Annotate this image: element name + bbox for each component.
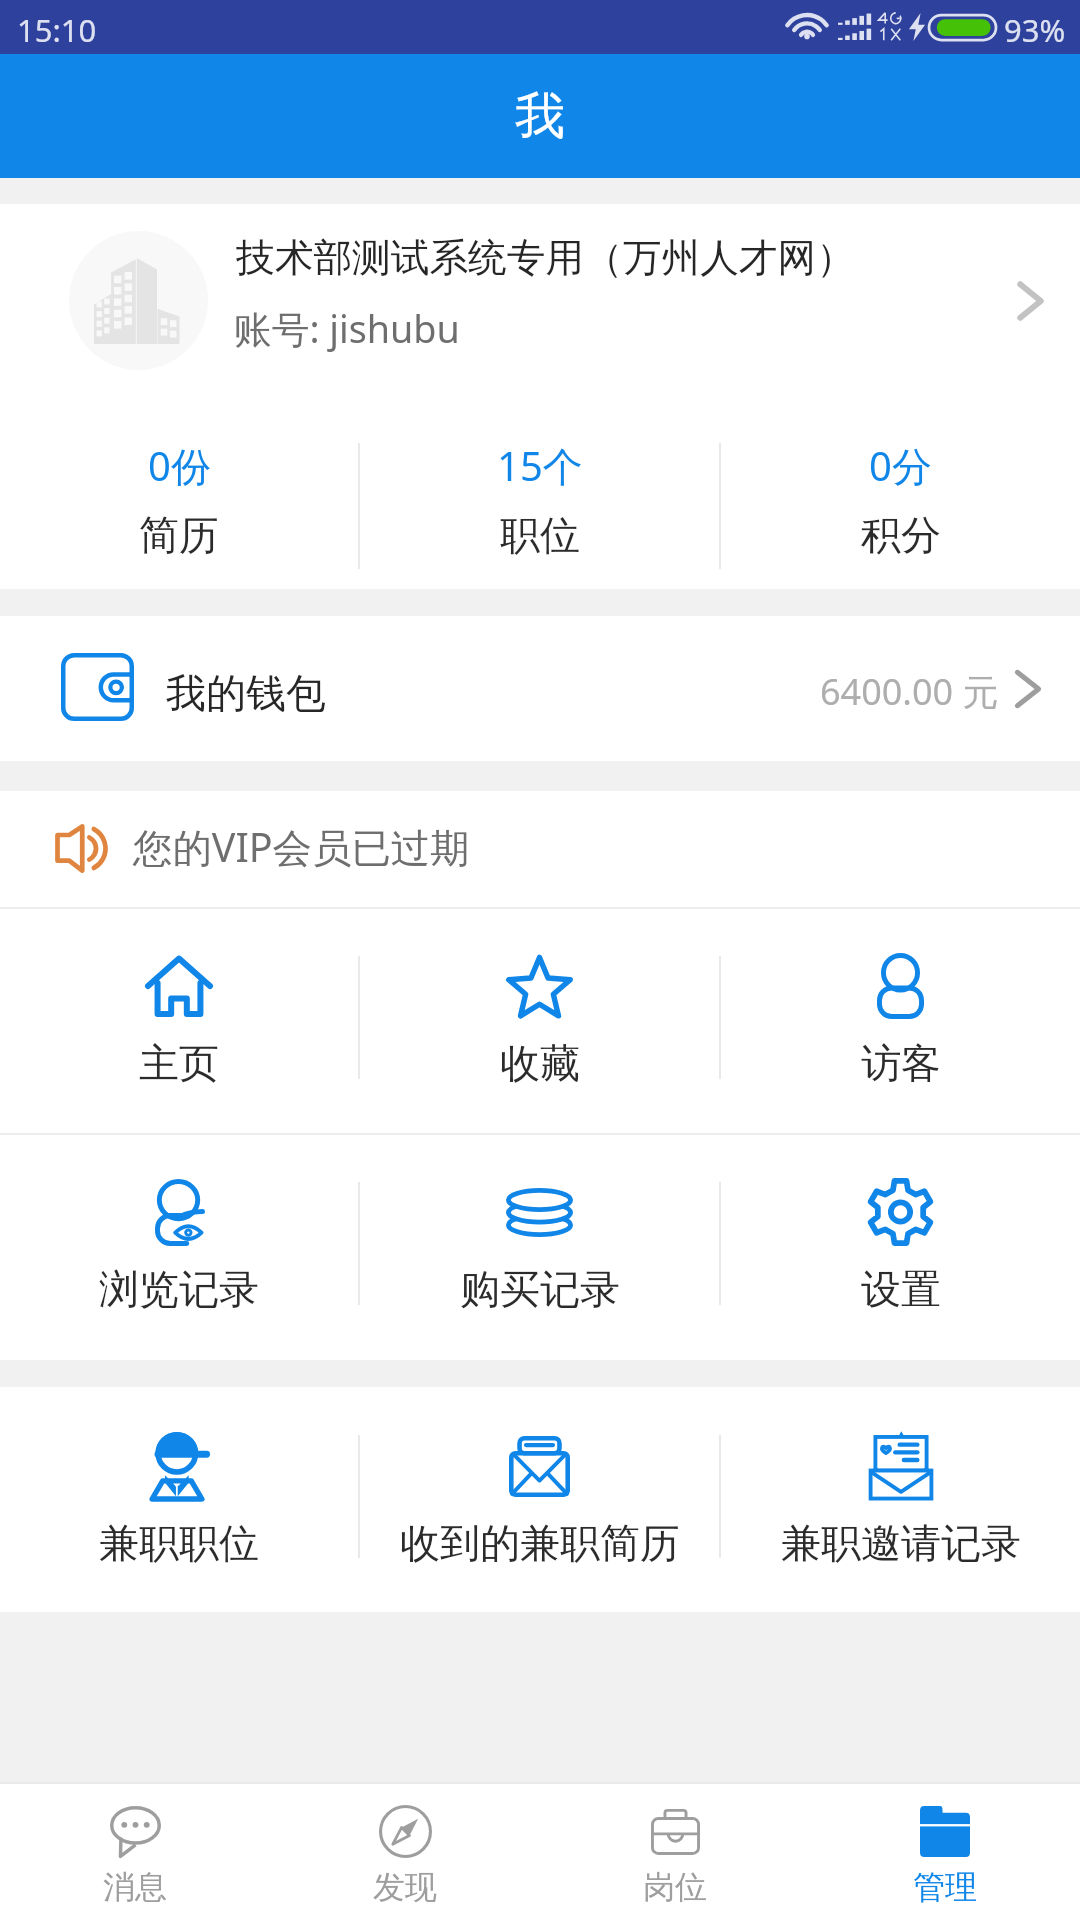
button[interactable]: 收到的兼职简历 [360, 1387, 719, 1612]
staticText: 15个 [497, 438, 583, 493]
staticText: 技术部测试系统专用（万州人才网） [236, 234, 855, 283]
staticText: 0份 [148, 438, 211, 493]
staticText: 管理 [913, 1867, 977, 1907]
staticText: 积分 [861, 510, 941, 560]
other: Open account details [1017, 282, 1044, 320]
staticText: 您的VIP会员已过期 [133, 820, 470, 874]
button[interactable]: 购买记录 [360, 1133, 719, 1360]
staticText: 兼职邀请记录 [781, 1518, 1021, 1568]
staticText: 简历 [139, 510, 219, 560]
button[interactable]: 管理 [810, 1782, 1080, 1920]
button[interactable]: 收藏 [360, 907, 719, 1133]
button[interactable]: 兼职邀请记录 [721, 1387, 1080, 1612]
button[interactable]: 兼职职位 [0, 1387, 358, 1612]
staticText: 发现 [373, 1867, 437, 1907]
button[interactable]: 访客 [721, 907, 1080, 1133]
staticText: 消息 [103, 1867, 167, 1907]
staticText: 收到的兼职简历 [400, 1518, 680, 1568]
button[interactable]: 0份 [0, 426, 358, 589]
staticText: 6400.00 元 [820, 667, 999, 716]
staticText: 收藏 [500, 1038, 580, 1088]
button[interactable]: 岗位 [540, 1782, 810, 1920]
button[interactable]: 发现 [270, 1782, 540, 1920]
button[interactable]: 15个 [360, 426, 719, 589]
staticText: 93% [1004, 9, 1066, 51]
staticText: 购买记录 [460, 1264, 620, 1314]
button[interactable]: 您的VIP会员已过期 [0, 791, 1080, 907]
staticText: 访客 [861, 1038, 941, 1088]
button[interactable]: 浏览记录 [0, 1133, 358, 1360]
button[interactable]: 我的钱包 [0, 616, 1080, 761]
other: Open wallet [1014, 670, 1042, 708]
staticText: 账号: jishubu [234, 303, 460, 354]
staticText: 0分 [869, 438, 932, 493]
staticText: 我的钱包 [166, 668, 326, 718]
button[interactable]: 主页 [0, 907, 358, 1133]
staticText: 主页 [139, 1038, 219, 1088]
staticText: 岗位 [643, 1867, 707, 1907]
staticText: 浏览记录 [99, 1264, 259, 1314]
staticText: 15:10 [17, 9, 97, 51]
button[interactable]: 消息 [0, 1782, 270, 1920]
staticText: 职位 [500, 510, 580, 560]
button[interactable]: 0分 [721, 426, 1080, 589]
button[interactable]: 技术部测试系统专用（万州人才网） [0, 204, 1080, 426]
staticText: 兼职职位 [99, 1518, 259, 1568]
staticText: 设置 [861, 1264, 941, 1314]
staticText: 我 [515, 85, 565, 148]
button[interactable]: 设置 [721, 1133, 1080, 1360]
